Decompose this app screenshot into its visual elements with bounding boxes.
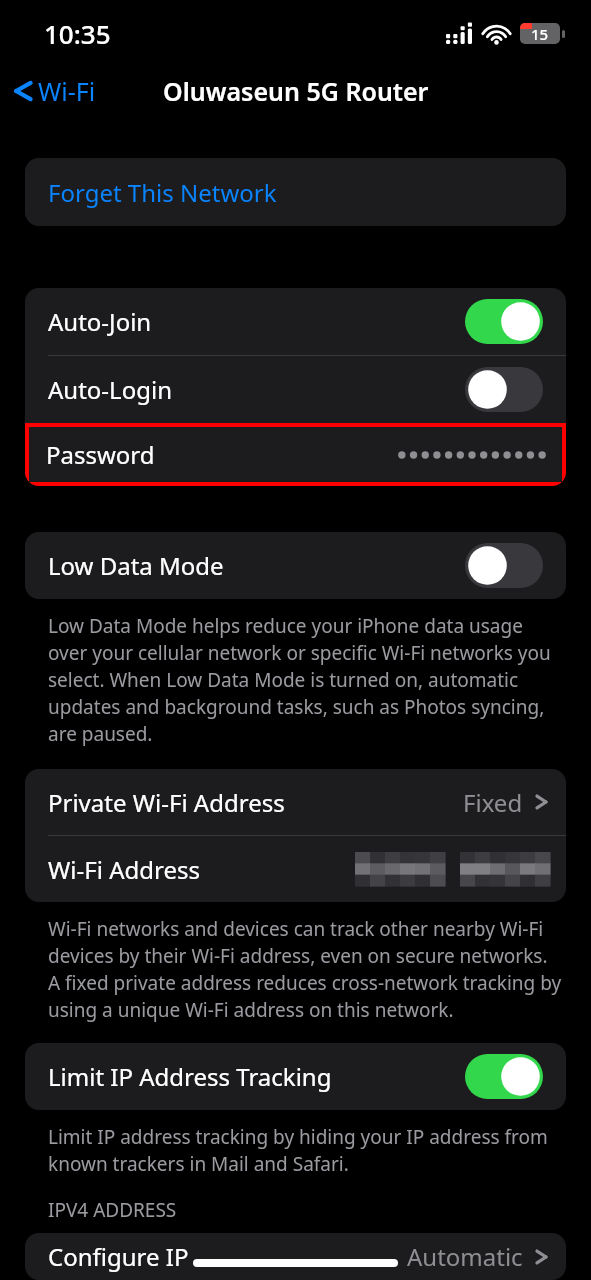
- staticText: Oluwaseun 5G Router: [163, 74, 429, 108]
- button[interactable]: On: [465, 1054, 543, 1099]
- staticText: Limit IP address tracking by hiding your…: [48, 1124, 563, 1177]
- button[interactable]: Wi-Fi Address: [25, 836, 566, 902]
- button[interactable]: Password: [25, 423, 566, 486]
- button[interactable]: On: [465, 299, 543, 344]
- staticText: Forget This Network: [48, 176, 277, 209]
- staticText: 10:35: [44, 16, 111, 51]
- button[interactable]: Off: [465, 367, 543, 412]
- button[interactable]: Low Data Mode: [25, 532, 566, 599]
- staticText: Wi-Fi: [38, 74, 96, 108]
- staticText: Low Data Mode helps reduce your iPhone d…: [48, 613, 563, 747]
- staticText: IPV4 ADDRESS: [48, 1197, 177, 1223]
- button[interactable]: Off: [465, 543, 543, 588]
- staticText: Auto-Join: [48, 305, 152, 338]
- button[interactable]: Configure IP: [25, 1233, 566, 1280]
- staticText: Fixed: [463, 786, 523, 819]
- staticText: Low Data Mode: [48, 549, 224, 582]
- button[interactable]: Auto-Join: [25, 288, 566, 355]
- staticText: Wi-Fi Address: [48, 853, 200, 886]
- staticText: Wi-Fi networks and devices can track oth…: [48, 916, 563, 1023]
- button[interactable]: Private Wi-Fi Address: [25, 769, 566, 835]
- button[interactable]: Wi-Fi: [0, 68, 106, 114]
- staticText: Limit IP Address Tracking: [48, 1060, 332, 1093]
- button[interactable]: Limit IP Address Tracking: [25, 1043, 566, 1110]
- button[interactable]: Auto-Login: [25, 356, 566, 423]
- staticText: Automatic: [407, 1240, 523, 1273]
- staticText: Auto-Login: [48, 373, 172, 406]
- button[interactable]: Forget This Network: [25, 158, 566, 226]
- staticText: Private Wi-Fi Address: [48, 786, 285, 819]
- staticText: Password: [46, 438, 155, 471]
- staticText: 15: [531, 24, 549, 44]
- staticText: Configure IP: [48, 1240, 189, 1273]
